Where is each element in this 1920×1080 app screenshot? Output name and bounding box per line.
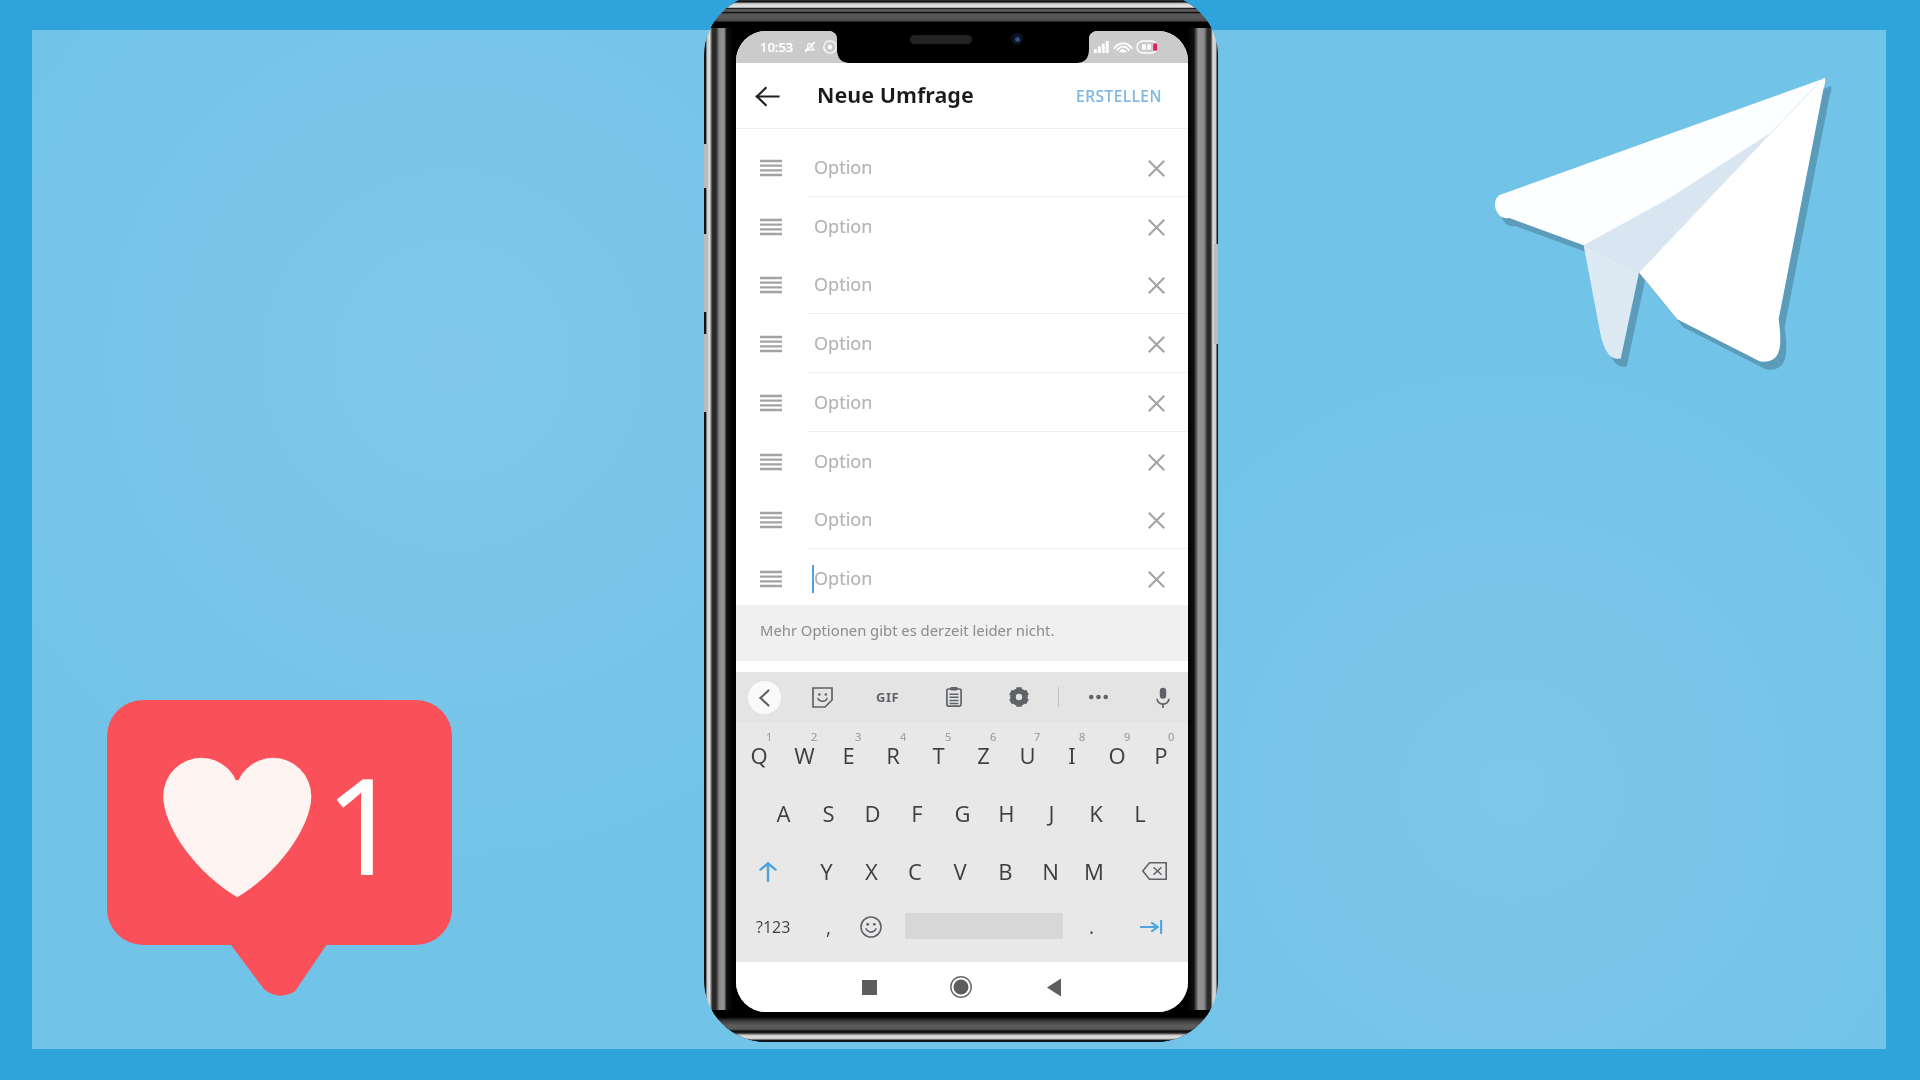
button[interactable]: Option [736,373,1188,432]
button[interactable]: K [1075,789,1117,837]
button[interactable]: Q [738,731,780,779]
staticText: R [886,740,900,770]
button[interactable]: Shift [746,849,790,893]
staticText: Z [977,740,990,770]
button[interactable]: U [1006,731,1048,779]
button[interactable]: ERSTELLEN [1051,69,1188,122]
staticText: 7 [1034,729,1041,744]
staticText: Y [820,856,833,886]
button[interactable]: Remove option [1136,148,1176,188]
staticText: L [1134,798,1146,828]
staticText: S [822,798,835,828]
staticText: C [908,856,922,886]
button[interactable]: Remove option [1136,265,1176,305]
button[interactable]: Remove option [1136,442,1176,482]
button[interactable]: E [827,731,869,779]
button[interactable]: Emoji [849,905,893,949]
staticText: D [864,798,881,828]
staticText: O [1108,740,1126,770]
button[interactable]: More options [1082,681,1114,713]
staticText: G [954,798,971,828]
button[interactable]: P [1140,731,1182,779]
button[interactable]: GIF [872,681,904,713]
button[interactable]: R [872,731,914,779]
button[interactable]: I [1051,731,1093,779]
button[interactable]: L [1119,789,1161,837]
button[interactable]: D [851,789,893,837]
button[interactable]: Remove option [1136,207,1176,247]
button[interactable]: Remove option [1136,383,1176,423]
button[interactable]: Keyboard settings [1003,681,1035,713]
button[interactable]: Stickers [806,681,838,713]
button[interactable]: J [1030,789,1072,837]
staticText: Neue Umfrage [817,80,974,109]
staticText: 9 [1124,729,1131,744]
button[interactable]: O [1096,731,1138,779]
staticText: Option [814,566,873,591]
button[interactable]: B [984,847,1026,895]
staticText: U [1019,740,1036,770]
staticText: Q [750,740,768,770]
button[interactable]: Z [962,731,1004,779]
staticText: 0 [1168,729,1175,744]
button[interactable]: F [896,789,938,837]
button[interactable]: C [894,847,936,895]
button[interactable]: T [917,731,959,779]
staticText: X [865,856,878,886]
button[interactable]: Remove option [1136,500,1176,540]
staticText: 4 [900,729,907,744]
button[interactable]: Back [1036,969,1072,1005]
staticText: T [932,740,945,770]
staticText: I [1068,740,1076,770]
button[interactable]: N [1029,847,1071,895]
staticText: Option [814,331,873,356]
staticText: K [1089,798,1103,828]
staticText: , [826,914,832,940]
button[interactable]: ?123 [742,905,804,949]
staticText: 5 [945,729,952,744]
button[interactable]: S [807,789,849,837]
button[interactable]: Hide keyboard [748,681,781,714]
staticText: B [998,856,1013,886]
button[interactable]: Remove option [1136,559,1176,599]
button[interactable]: Backspace [1132,849,1176,893]
button[interactable]: Next field [1130,905,1174,949]
staticText: ?123 [756,916,791,938]
staticText: Option [814,155,873,180]
button[interactable]: V [939,847,981,895]
staticText: 8 [1079,729,1086,744]
button[interactable]: M [1073,847,1115,895]
button[interactable]: Option [736,138,1188,197]
button[interactable]: Clipboard [938,681,970,713]
button[interactable]: Option [736,197,1188,256]
button[interactable]: H [985,789,1027,837]
button[interactable]: Voice input [1147,681,1179,713]
button[interactable]: Option [736,549,1188,608]
button[interactable]: , [809,905,849,949]
button[interactable]: Recents [851,969,887,1005]
button[interactable]: Back [745,74,789,118]
button[interactable]: A [762,789,804,837]
button[interactable]: Y [805,847,847,895]
staticText: J [1048,798,1055,828]
staticText: F [911,798,923,828]
button[interactable]: Option [736,255,1188,314]
button[interactable]: Option [736,314,1188,373]
button[interactable]: Option [736,490,1188,549]
staticText: . [1089,914,1095,940]
button[interactable]: X [850,847,892,895]
staticText: E [842,740,855,770]
button[interactable]: W [783,731,825,779]
staticText: M [1084,856,1104,886]
staticText: Option [814,390,873,415]
staticText: V [953,856,967,886]
button[interactable]: Remove option [1136,324,1176,364]
staticText: Option [814,214,873,239]
staticText: Option [814,272,873,297]
button[interactable]: Home [943,969,979,1005]
staticText: W [794,740,815,770]
button[interactable]: G [941,789,983,837]
button[interactable]: . [1072,905,1112,949]
button[interactable]: Option [736,432,1188,491]
